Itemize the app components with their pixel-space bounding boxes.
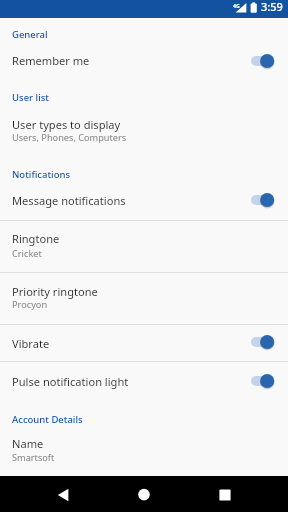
staticText: Procyon <box>12 298 48 311</box>
button[interactable]: Home <box>121 476 167 512</box>
button[interactable]: Priority ringtone <box>0 273 288 324</box>
staticText: Smartsoft <box>12 451 55 464</box>
staticText: 3:59 <box>261 0 283 14</box>
staticText: Notifications <box>12 168 71 181</box>
button[interactable]: Remember me <box>0 43 288 80</box>
button[interactable]: Pulse notification light <box>0 362 288 399</box>
staticText: Account Details <box>12 413 83 426</box>
staticText: User types to display <box>12 117 121 132</box>
staticText: Name <box>12 436 44 451</box>
staticText: Users, Phones, Computers <box>12 131 127 144</box>
button[interactable]: User types to display <box>0 105 288 157</box>
staticText: Remember me <box>12 53 90 68</box>
staticText: 4G <box>233 2 240 9</box>
staticText: General <box>12 28 48 41</box>
staticText: Cricket <box>12 247 42 260</box>
staticText: Message notifications <box>12 193 126 208</box>
staticText: Ringtone <box>12 231 60 246</box>
staticText: User list <box>12 91 49 104</box>
staticText: Vibrate <box>12 336 50 351</box>
button[interactable]: Name <box>0 424 288 476</box>
button[interactable]: Recent apps <box>202 476 248 512</box>
button[interactable]: Ringtone <box>0 221 288 272</box>
button[interactable]: Vibrate <box>0 325 288 361</box>
staticText: Pulse notification light <box>12 374 129 389</box>
staticText: Priority ringtone <box>12 284 98 299</box>
button[interactable]: Back <box>40 476 86 512</box>
button[interactable]: Message notifications <box>0 182 288 220</box>
